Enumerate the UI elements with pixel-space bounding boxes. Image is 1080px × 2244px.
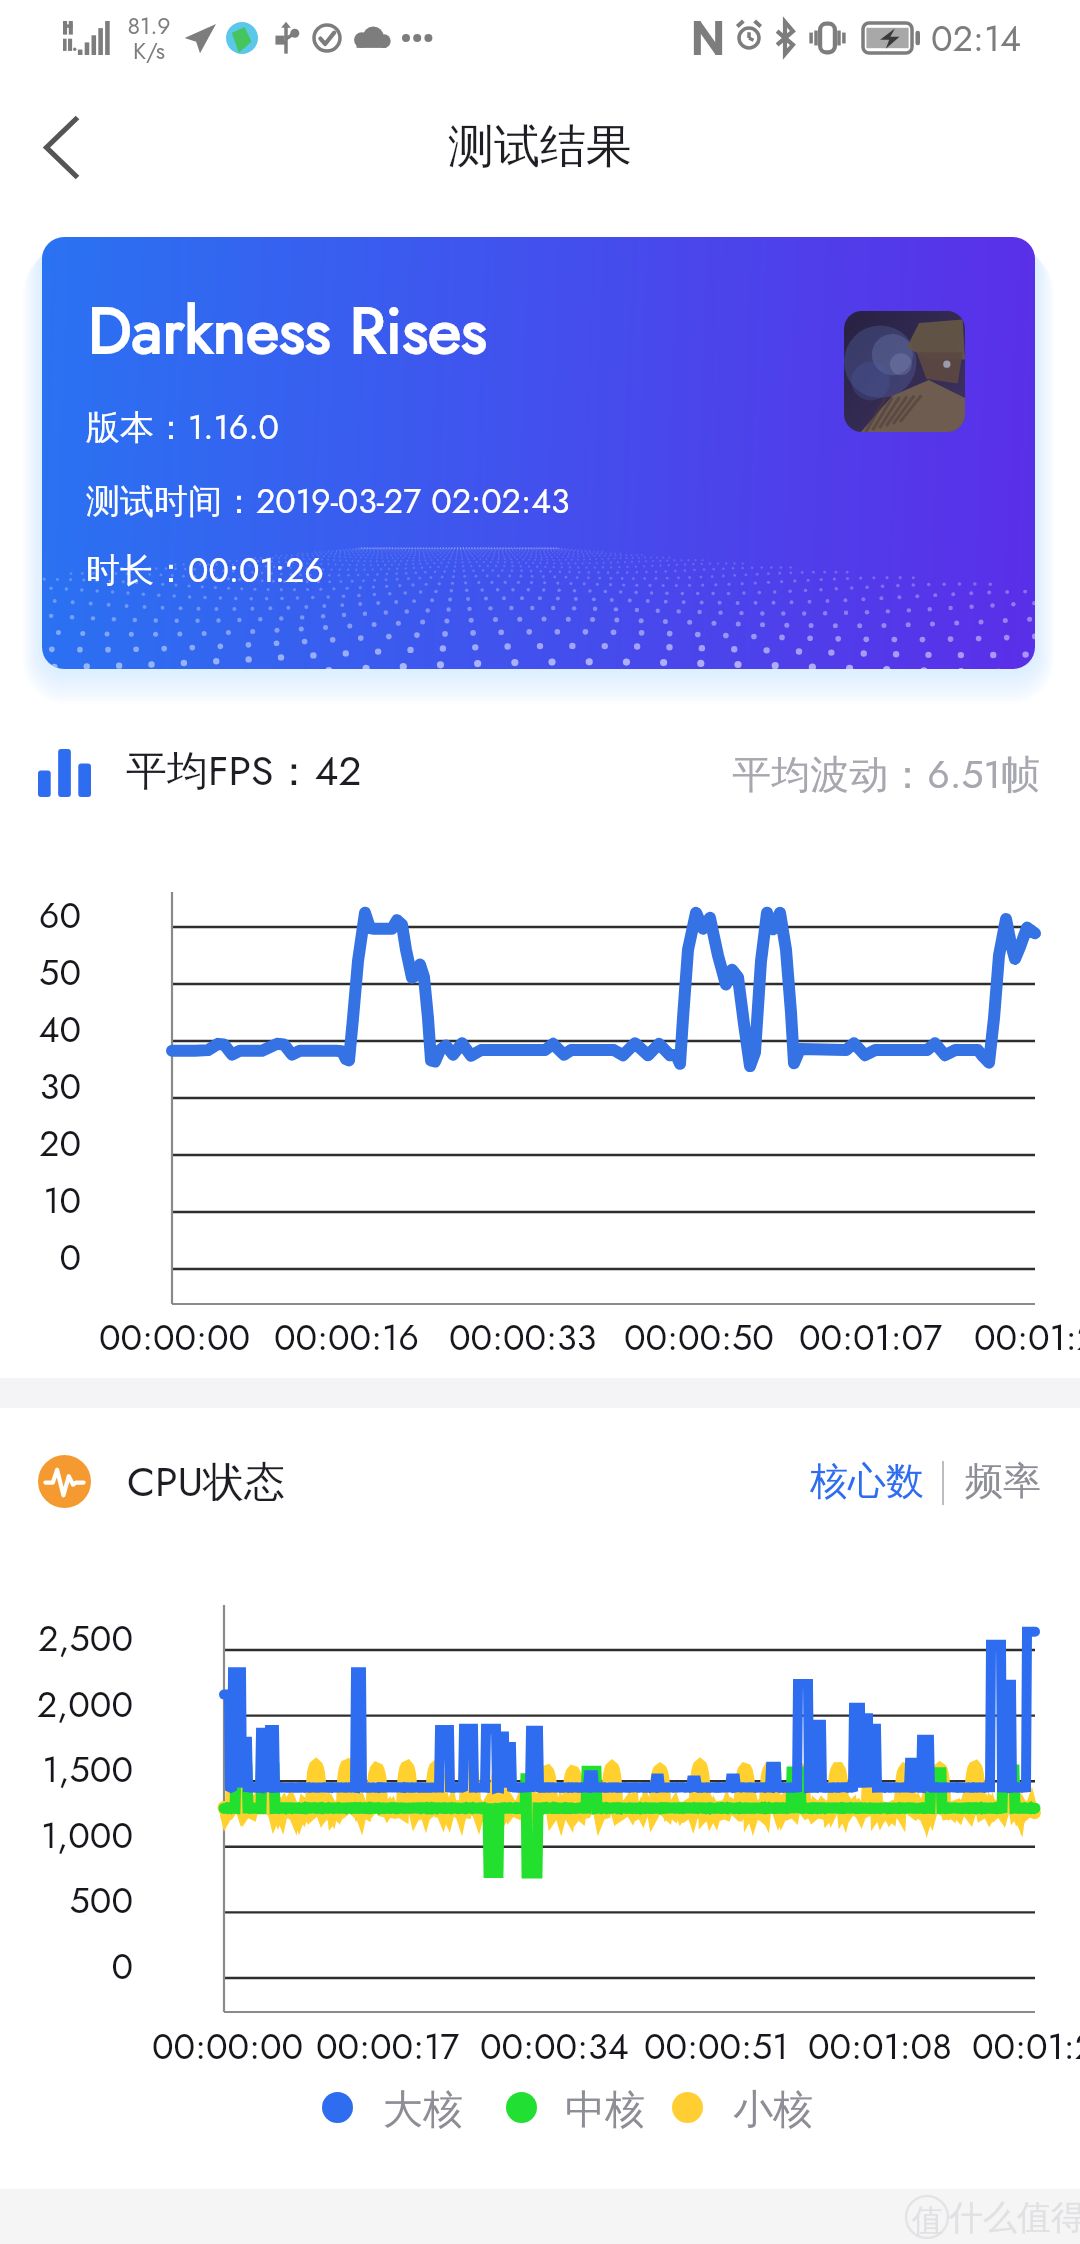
staticText: 大核 xyxy=(383,2084,463,2134)
staticText: 81.9 K/s xyxy=(127,9,171,67)
staticText: 时长：00:01:26 xyxy=(86,546,324,595)
staticText: 50 xyxy=(0,946,81,998)
staticText: 1,500 xyxy=(0,1743,133,1795)
staticText: 30 xyxy=(0,1060,81,1112)
staticText: 00:01:2 xyxy=(974,1311,1080,1363)
staticText: 00:01:08 xyxy=(808,2020,952,2072)
staticText: 测试结果 xyxy=(448,118,632,176)
staticText: 1,000 xyxy=(0,1809,133,1861)
staticText: 10 xyxy=(0,1174,81,1226)
staticText: 20 xyxy=(0,1117,81,1169)
staticText: 00:00:00 xyxy=(152,2020,304,2072)
button[interactable]: 频率 xyxy=(962,1448,1044,1514)
staticText: 40 xyxy=(0,1003,81,1055)
staticText: 00:01:07 xyxy=(799,1311,943,1363)
staticText: 2,500 xyxy=(0,1612,133,1664)
staticText: 什么值得买 xyxy=(949,2196,1080,2239)
staticText: 00:01:2 xyxy=(972,2020,1080,2072)
staticText: 00:00:50 xyxy=(624,1311,774,1363)
staticText: 平均FPS：42 xyxy=(126,741,362,800)
staticText: 核心数 xyxy=(810,1457,924,1505)
staticText: 500 xyxy=(0,1874,133,1926)
staticText: 0 xyxy=(0,1231,81,1283)
staticText: 小核 xyxy=(733,2084,813,2134)
staticText: 平均波动：6.51帧 xyxy=(0,746,1040,802)
staticText: Darkness Rises xyxy=(88,285,487,377)
staticText: CPU状态 xyxy=(127,1452,286,1511)
staticText: 测试时间：2019-03-27 02:02:43 xyxy=(86,477,570,526)
staticText: 频率 xyxy=(965,1457,1041,1505)
button[interactable]: Darkness Rises xyxy=(42,237,1035,669)
staticText: 版本：1.16.0 xyxy=(86,403,279,452)
staticText: 60 xyxy=(0,889,81,941)
staticText: 00:00:51 xyxy=(644,2020,789,2072)
staticText: 00:00:16 xyxy=(274,1311,419,1363)
staticText: 中核 xyxy=(565,2084,645,2134)
staticText: 00:00:33 xyxy=(449,1311,597,1363)
button[interactable]: Back xyxy=(12,97,112,197)
staticText: 2,000 xyxy=(0,1678,133,1730)
staticText: 00:00:00 xyxy=(99,1311,251,1363)
staticText: 00:00:17 xyxy=(316,2020,460,2072)
button[interactable]: 核心数 xyxy=(800,1448,934,1514)
staticText: 00:00:34 xyxy=(480,2020,629,2072)
staticText: 0 xyxy=(0,1940,133,1992)
staticText: 02:14 xyxy=(931,12,1022,64)
staticText: 值 xyxy=(912,2201,943,2240)
